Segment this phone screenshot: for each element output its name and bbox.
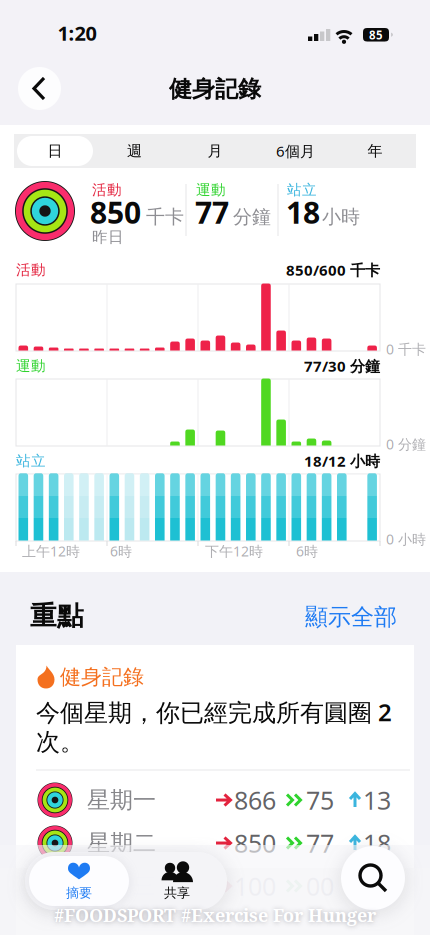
staticText: 小時 [322, 205, 360, 229]
staticText: 00 [306, 869, 334, 903]
button[interactable]: 摘要 [29, 853, 129, 909]
staticText: 站立 [287, 181, 317, 199]
staticText: 1:20 [57, 19, 96, 47]
button[interactable]: 星期三 [36, 864, 410, 907]
button[interactable]: 共享 [129, 853, 225, 909]
staticText: 顯示全部 [305, 602, 397, 631]
staticText: 重點 [30, 599, 84, 633]
staticText: 健身記錄 [60, 664, 144, 690]
staticText: 0 千卡 [386, 339, 426, 359]
staticText: #FOODSPORT #Exercise For Hunger [54, 903, 376, 927]
button[interactable]: 日 [17, 136, 93, 166]
staticText: 運動 [16, 357, 46, 375]
staticText: 星期三 [87, 871, 156, 900]
staticText: 6時 [110, 541, 132, 561]
staticText: 77 [306, 826, 334, 860]
staticText: 昨日 [92, 227, 124, 247]
button[interactable]: 顯示全部 [305, 602, 397, 631]
staticText: 月 [207, 142, 222, 160]
staticText: 14 [363, 869, 391, 903]
button[interactable]: Back [18, 67, 61, 110]
staticText: 75 [306, 783, 334, 817]
button[interactable]: 星期一 [36, 778, 410, 821]
staticText: 千卡 [146, 205, 184, 229]
staticText: 共享 [164, 885, 190, 901]
staticText: 分鐘 [233, 205, 271, 229]
staticText: 運動 [196, 181, 226, 199]
staticText: 850 [234, 826, 276, 860]
staticText: 18 [286, 192, 320, 232]
button[interactable]: 6個月 [256, 135, 334, 167]
staticText: 下午12時 [205, 541, 263, 561]
staticText: 站立 [16, 452, 46, 470]
button[interactable]: 年 [336, 135, 414, 167]
staticText: 星期二 [87, 828, 156, 857]
staticText: 850/600 千卡 [286, 260, 380, 280]
staticText: 77/30 分鐘 [304, 356, 380, 376]
staticText: 健身記錄 [169, 74, 261, 103]
staticText: 日 [47, 142, 62, 160]
staticText: 上午12時 [22, 541, 80, 561]
button[interactable]: 月 [176, 135, 254, 167]
button[interactable]: 週 [95, 135, 173, 167]
staticText: 6時 [296, 541, 318, 561]
staticText: 今個星期，你已經完成所有圓圈 2 [36, 696, 392, 728]
button[interactable]: 星期二 [36, 821, 410, 864]
staticText: 活動 [92, 181, 122, 199]
staticText: 年 [367, 142, 382, 160]
staticText: 0 小時 [386, 529, 426, 549]
staticText: 77 [195, 192, 229, 232]
staticText: 次。 [36, 727, 84, 757]
button[interactable]: Search [341, 846, 405, 910]
staticText: 866 [234, 783, 276, 817]
staticText: 6個月 [276, 141, 315, 161]
staticText: 活動 [16, 261, 46, 279]
staticText: 850 [90, 192, 141, 232]
staticText: 18/12 小時 [304, 451, 380, 471]
staticText: 週 [127, 142, 142, 160]
staticText: 摘要 [66, 885, 92, 901]
staticText: 85 [369, 27, 383, 43]
staticText: 18 [363, 826, 391, 860]
staticText: 星期一 [87, 785, 156, 814]
staticText: 0 分鐘 [386, 434, 426, 454]
staticText: 13 [363, 783, 391, 817]
